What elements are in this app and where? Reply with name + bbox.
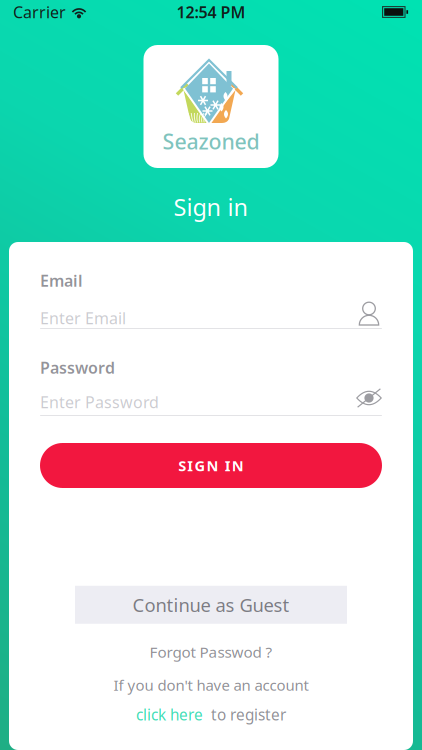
staticText: Carrier [13,1,66,23]
button[interactable]: Continue as Guest [75,586,347,624]
staticText: Forgot Passwod ? [149,641,272,662]
staticText: Sign in [173,191,248,223]
button[interactable]: Forgot Passwod ? [40,642,382,662]
staticText: Enter Email [40,307,126,329]
staticText: Enter Password [40,391,159,413]
button[interactable]: click here [136,704,203,725]
button[interactable]: SIGN IN [40,443,382,488]
staticText: Email [40,270,83,291]
staticText: Continue as Guest [132,592,289,617]
staticText: 12:54 PM [176,1,245,23]
staticText: Seazoned [162,127,259,155]
staticText: SIGN IN [178,456,244,475]
staticText: click here [136,704,203,725]
staticText: to register [203,704,286,725]
staticText: If you don't have an account [113,675,308,695]
staticText: Password [40,357,115,378]
